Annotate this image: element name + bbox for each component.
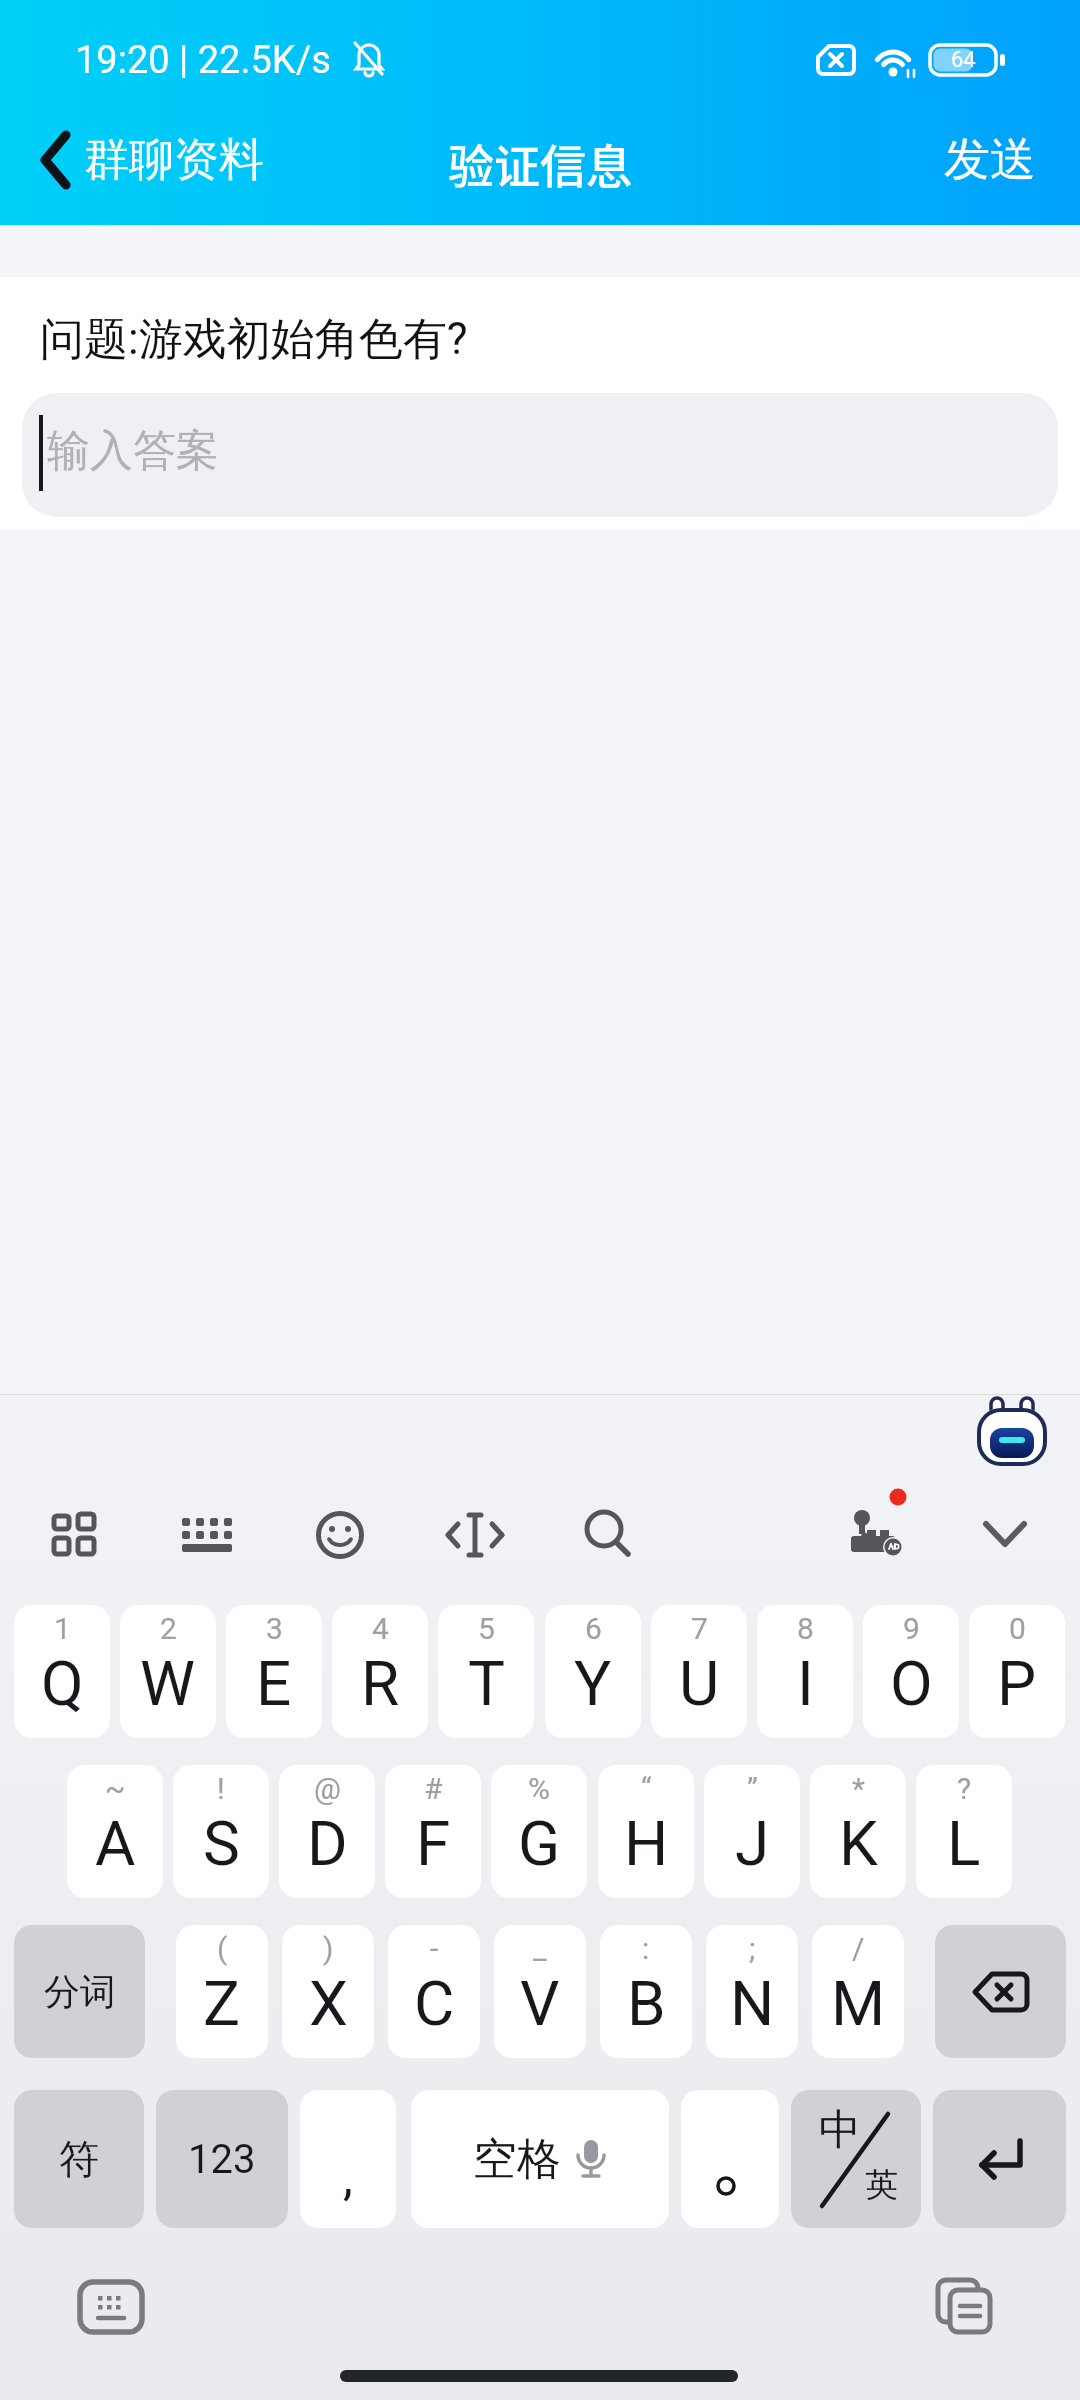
staticText: :: [642, 1931, 650, 1966]
staticText: 符: [59, 2134, 99, 2184]
staticText: 19:20 | 22.5K/s: [75, 38, 331, 83]
button[interactable]: ~: [67, 1765, 163, 1898]
button[interactable]: *: [810, 1765, 906, 1898]
staticText: B: [627, 1967, 666, 2040]
button[interactable]: [977, 1398, 1047, 1468]
button[interactable]: #: [385, 1765, 481, 1898]
button[interactable]: !: [173, 1765, 269, 1898]
staticText: “: [641, 1771, 652, 1806]
button[interactable]: 7: [651, 1605, 747, 1738]
staticText: G: [518, 1807, 561, 1880]
button[interactable]: _: [494, 1925, 586, 2058]
staticText: L: [947, 1807, 981, 1880]
staticText: _: [533, 1931, 547, 1966]
button[interactable]: [315, 1510, 365, 1560]
staticText: 2: [160, 1611, 177, 1646]
button[interactable]: 1: [14, 1605, 110, 1738]
button[interactable]: ;: [706, 1925, 798, 2058]
staticText: ~: [105, 1771, 126, 1806]
staticText: 5: [478, 1611, 495, 1646]
button[interactable]: [933, 2090, 1066, 2228]
button[interactable]: 0: [969, 1605, 1065, 1738]
staticText: 64: [951, 47, 976, 73]
button[interactable]: ): [282, 1925, 374, 2058]
button[interactable]: 9: [863, 1605, 959, 1738]
staticText: 空格: [473, 2132, 561, 2187]
staticText: %: [528, 1771, 550, 1806]
staticText: 123: [188, 2136, 256, 2183]
button[interactable]: [935, 1925, 1066, 2058]
button[interactable]: (: [176, 1925, 268, 2058]
staticText: 中: [819, 2104, 861, 2157]
staticText: F: [416, 1807, 451, 1880]
button[interactable]: -: [388, 1925, 480, 2058]
staticText: ;: [749, 1931, 756, 1966]
staticText: *: [852, 1771, 865, 1806]
staticText: U: [679, 1647, 720, 1720]
button[interactable]: 6: [545, 1605, 641, 1738]
button[interactable]: “: [598, 1765, 694, 1898]
staticText: 4: [372, 1611, 389, 1646]
button[interactable]: [984, 1522, 1030, 1552]
staticText: /: [852, 1931, 865, 1966]
staticText: 6: [585, 1611, 602, 1646]
button[interactable]: :: [600, 1925, 692, 2058]
staticText: C: [414, 1967, 455, 2040]
button[interactable]: 4: [332, 1605, 428, 1738]
staticText: V: [520, 1967, 560, 2040]
button[interactable]: 群聊资料: [40, 126, 264, 194]
staticText: ): [323, 1931, 334, 1966]
button[interactable]: ”: [704, 1765, 800, 1898]
staticText: 9: [903, 1611, 920, 1646]
staticText: 8: [797, 1611, 814, 1646]
button[interactable]: 输入答案: [22, 393, 1058, 517]
staticText: 问题:游戏初始角色有?: [40, 312, 468, 367]
staticText: X: [309, 1967, 348, 2040]
button[interactable]: ?: [916, 1765, 1012, 1898]
button[interactable]: ,: [300, 2090, 396, 2228]
button[interactable]: 3: [226, 1605, 322, 1738]
staticText: Z: [203, 1967, 241, 2040]
staticText: 分词: [44, 1969, 116, 2014]
staticText: @: [314, 1771, 341, 1806]
button[interactable]: 123: [156, 2090, 288, 2228]
button[interactable]: 空格: [411, 2090, 669, 2228]
button[interactable]: [78, 2278, 144, 2336]
button[interactable]: [583, 1510, 633, 1560]
staticText: (: [217, 1931, 228, 1966]
staticText: N: [730, 1967, 775, 2040]
button[interactable]: /: [812, 1925, 904, 2058]
staticText: O: [890, 1647, 933, 1720]
staticText: Q: [41, 1647, 84, 1720]
staticText: !: [217, 1771, 225, 1806]
button[interactable]: [936, 2278, 996, 2336]
button[interactable]: [849, 1490, 915, 1556]
button[interactable]: 发送: [920, 120, 1060, 200]
button[interactable]: 2: [120, 1605, 216, 1738]
staticText: #: [424, 1771, 443, 1806]
staticText: T: [468, 1647, 505, 1720]
button[interactable]: 5: [438, 1605, 534, 1738]
staticText: 3: [266, 1611, 283, 1646]
staticText: 输入答案: [47, 424, 219, 478]
button[interactable]: [52, 1512, 98, 1558]
button[interactable]: %: [491, 1765, 587, 1898]
staticText: 1: [54, 1611, 71, 1646]
staticText: E: [256, 1647, 292, 1720]
button[interactable]: 8: [757, 1605, 853, 1738]
button[interactable]: [446, 1512, 504, 1558]
button[interactable]: 中: [791, 2090, 921, 2228]
button[interactable]: @: [279, 1765, 375, 1898]
staticText: M: [831, 1967, 886, 2040]
staticText: ”: [747, 1771, 758, 1806]
staticText: W: [140, 1647, 196, 1720]
button[interactable]: [681, 2090, 779, 2228]
button[interactable]: 符: [14, 2090, 144, 2228]
button[interactable]: 分词: [14, 1925, 145, 2058]
staticText: 验证信息: [448, 130, 632, 197]
staticText: ?: [957, 1771, 972, 1806]
staticText: S: [203, 1807, 240, 1880]
staticText: Y: [574, 1647, 612, 1720]
button[interactable]: [180, 1516, 236, 1556]
staticText: K: [839, 1807, 878, 1880]
